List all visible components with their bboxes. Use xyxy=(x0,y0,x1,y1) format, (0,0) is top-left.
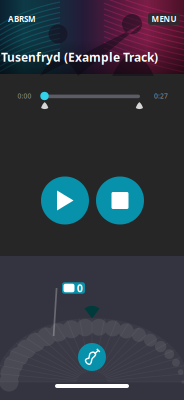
staticText: 0:27 xyxy=(154,92,168,100)
button[interactable]: Stop xyxy=(96,176,144,224)
button[interactable]: Metronome beat toggle xyxy=(62,282,85,294)
button[interactable]: MENU xyxy=(148,13,180,25)
staticText: Tusenfryd (Example Track) xyxy=(1,49,158,65)
staticText: 0:00 xyxy=(17,92,31,100)
staticText: ABRSM xyxy=(8,14,36,24)
button[interactable]: Play xyxy=(41,176,89,224)
staticText: 0 xyxy=(77,281,83,295)
staticText: MENU xyxy=(151,14,176,24)
